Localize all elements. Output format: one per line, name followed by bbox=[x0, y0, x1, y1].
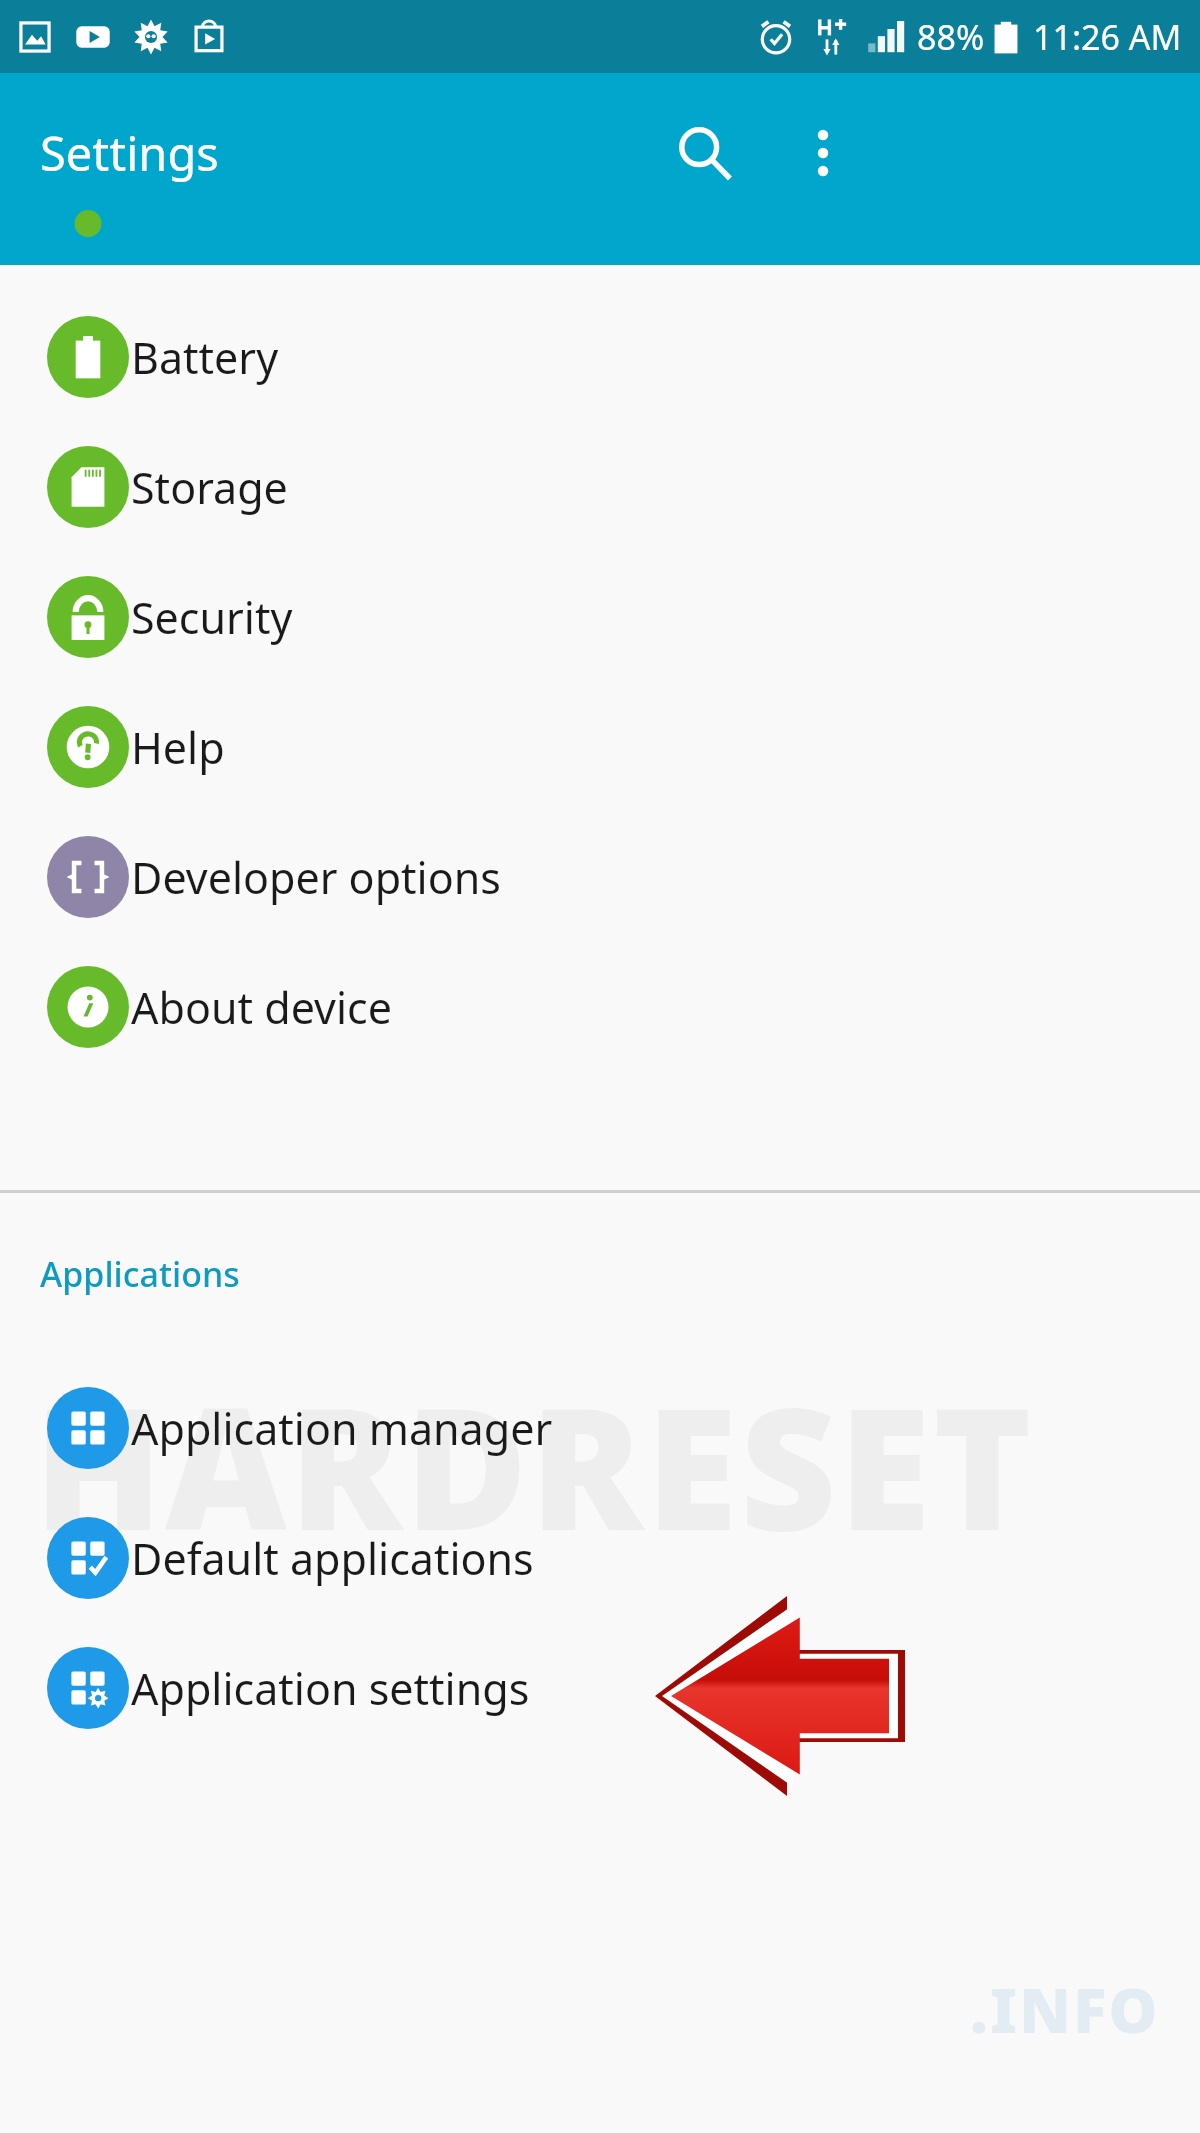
staticText: 11:26 AM bbox=[1033, 14, 1182, 60]
staticText: Settings bbox=[40, 121, 219, 185]
staticText: .INFO bbox=[970, 1967, 1160, 2051]
button[interactable]: Help bbox=[0, 682, 1200, 812]
staticText: HARDRESET bbox=[34, 1350, 1035, 1579]
button[interactable]: More options bbox=[773, 103, 873, 203]
staticText: Developer options bbox=[131, 848, 501, 907]
staticText: Default applications bbox=[131, 1529, 534, 1588]
staticText: Battery bbox=[131, 328, 279, 387]
button[interactable]: Search bbox=[655, 103, 755, 203]
button[interactable]: Developer options bbox=[0, 812, 1200, 942]
button[interactable]: Storage bbox=[0, 422, 1200, 552]
staticText: Security bbox=[131, 588, 293, 647]
staticText: Storage bbox=[131, 458, 288, 517]
staticText: Application settings bbox=[131, 1659, 530, 1718]
staticText: 88% bbox=[917, 14, 985, 60]
staticText: Application manager bbox=[131, 1399, 553, 1458]
button[interactable]: Application manager bbox=[0, 1363, 1200, 1493]
button[interactable]: About device bbox=[0, 942, 1200, 1072]
button[interactable]: Battery bbox=[0, 292, 1200, 422]
staticText: About device bbox=[131, 978, 392, 1037]
staticText: Applications bbox=[40, 1251, 240, 1297]
button[interactable]: Application settings bbox=[0, 1623, 1200, 1753]
button[interactable]: Security bbox=[0, 552, 1200, 682]
staticText: Help bbox=[131, 718, 225, 777]
button[interactable]: Default applications bbox=[0, 1493, 1200, 1623]
